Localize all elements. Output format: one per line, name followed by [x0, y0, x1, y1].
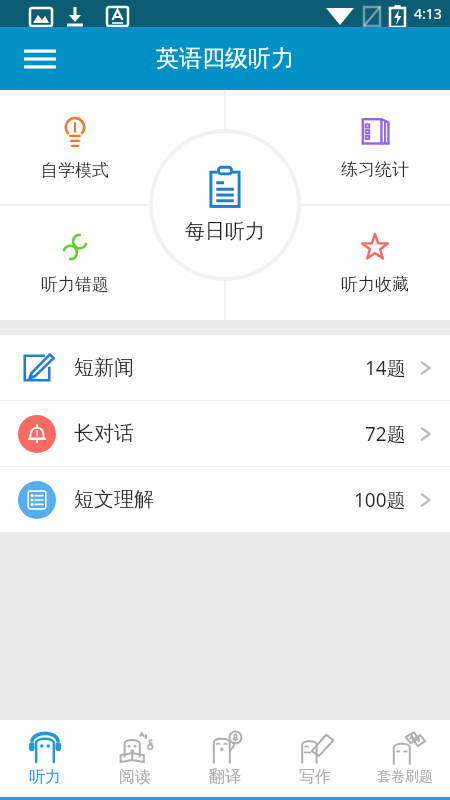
staticText: 听力错题 — [41, 274, 109, 295]
button[interactable]: 自学模式 — [0, 90, 150, 205]
button[interactable]: 短新闻 — [0, 335, 450, 400]
staticText: 阅读 — [119, 767, 151, 787]
button[interactable]: 听力 — [0, 720, 90, 797]
button[interactable]: 阅读 — [90, 720, 180, 797]
staticText: 每日听力 — [185, 219, 265, 244]
staticText: 自学模式 — [41, 160, 109, 181]
staticText: 短文理解 — [74, 487, 154, 512]
staticText: 100题 — [354, 487, 406, 513]
staticText: 英语四级听力 — [156, 44, 294, 73]
staticText: 翻译 — [209, 767, 241, 787]
button[interactable]: 套卷刷题 — [360, 720, 450, 797]
staticText: 套卷刷题 — [377, 768, 433, 786]
button[interactable]: 写作 — [270, 720, 360, 797]
button[interactable]: 听力错题 — [0, 205, 150, 320]
staticText: 练习统计 — [341, 159, 409, 180]
button[interactable]: Menu — [18, 37, 62, 81]
button[interactable]: 短文理解 — [0, 467, 450, 532]
button[interactable]: 长对话 — [0, 401, 450, 466]
button[interactable]: 每日听力 — [149, 129, 301, 281]
button[interactable]: 练习统计 — [300, 90, 450, 205]
staticText: 听力收藏 — [341, 274, 409, 295]
staticText: 长对话 — [74, 421, 134, 446]
button[interactable]: 听力收藏 — [300, 205, 450, 320]
staticText: 72题 — [365, 421, 406, 447]
staticText: 听力 — [29, 767, 61, 787]
staticText: 4:13 — [414, 4, 442, 23]
button[interactable]: 翻译 — [180, 720, 270, 797]
staticText: 写作 — [299, 767, 331, 787]
staticText: 短新闻 — [74, 355, 134, 380]
staticText: 14题 — [365, 355, 406, 381]
